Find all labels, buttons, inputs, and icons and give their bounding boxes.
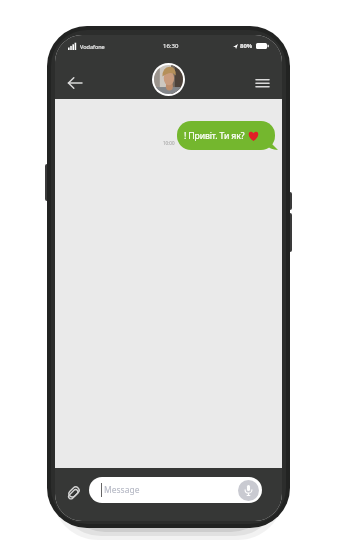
button[interactable] — [63, 71, 87, 95]
staticText: Vodafone — [80, 43, 105, 50]
button[interactable] — [251, 72, 273, 94]
staticText: ! Привіт. Ти як? — [184, 130, 245, 142]
staticText: 80% — [240, 42, 253, 50]
staticText: 16:30 — [163, 42, 179, 50]
button[interactable] — [63, 482, 83, 502]
button[interactable]: ! Привіт. Ти як? — [177, 121, 275, 150]
staticText: 10:00 — [163, 140, 175, 146]
button[interactable] — [152, 63, 185, 96]
button[interactable]: Message — [89, 477, 262, 503]
staticText: Message — [104, 484, 238, 496]
button[interactable] — [238, 480, 259, 501]
